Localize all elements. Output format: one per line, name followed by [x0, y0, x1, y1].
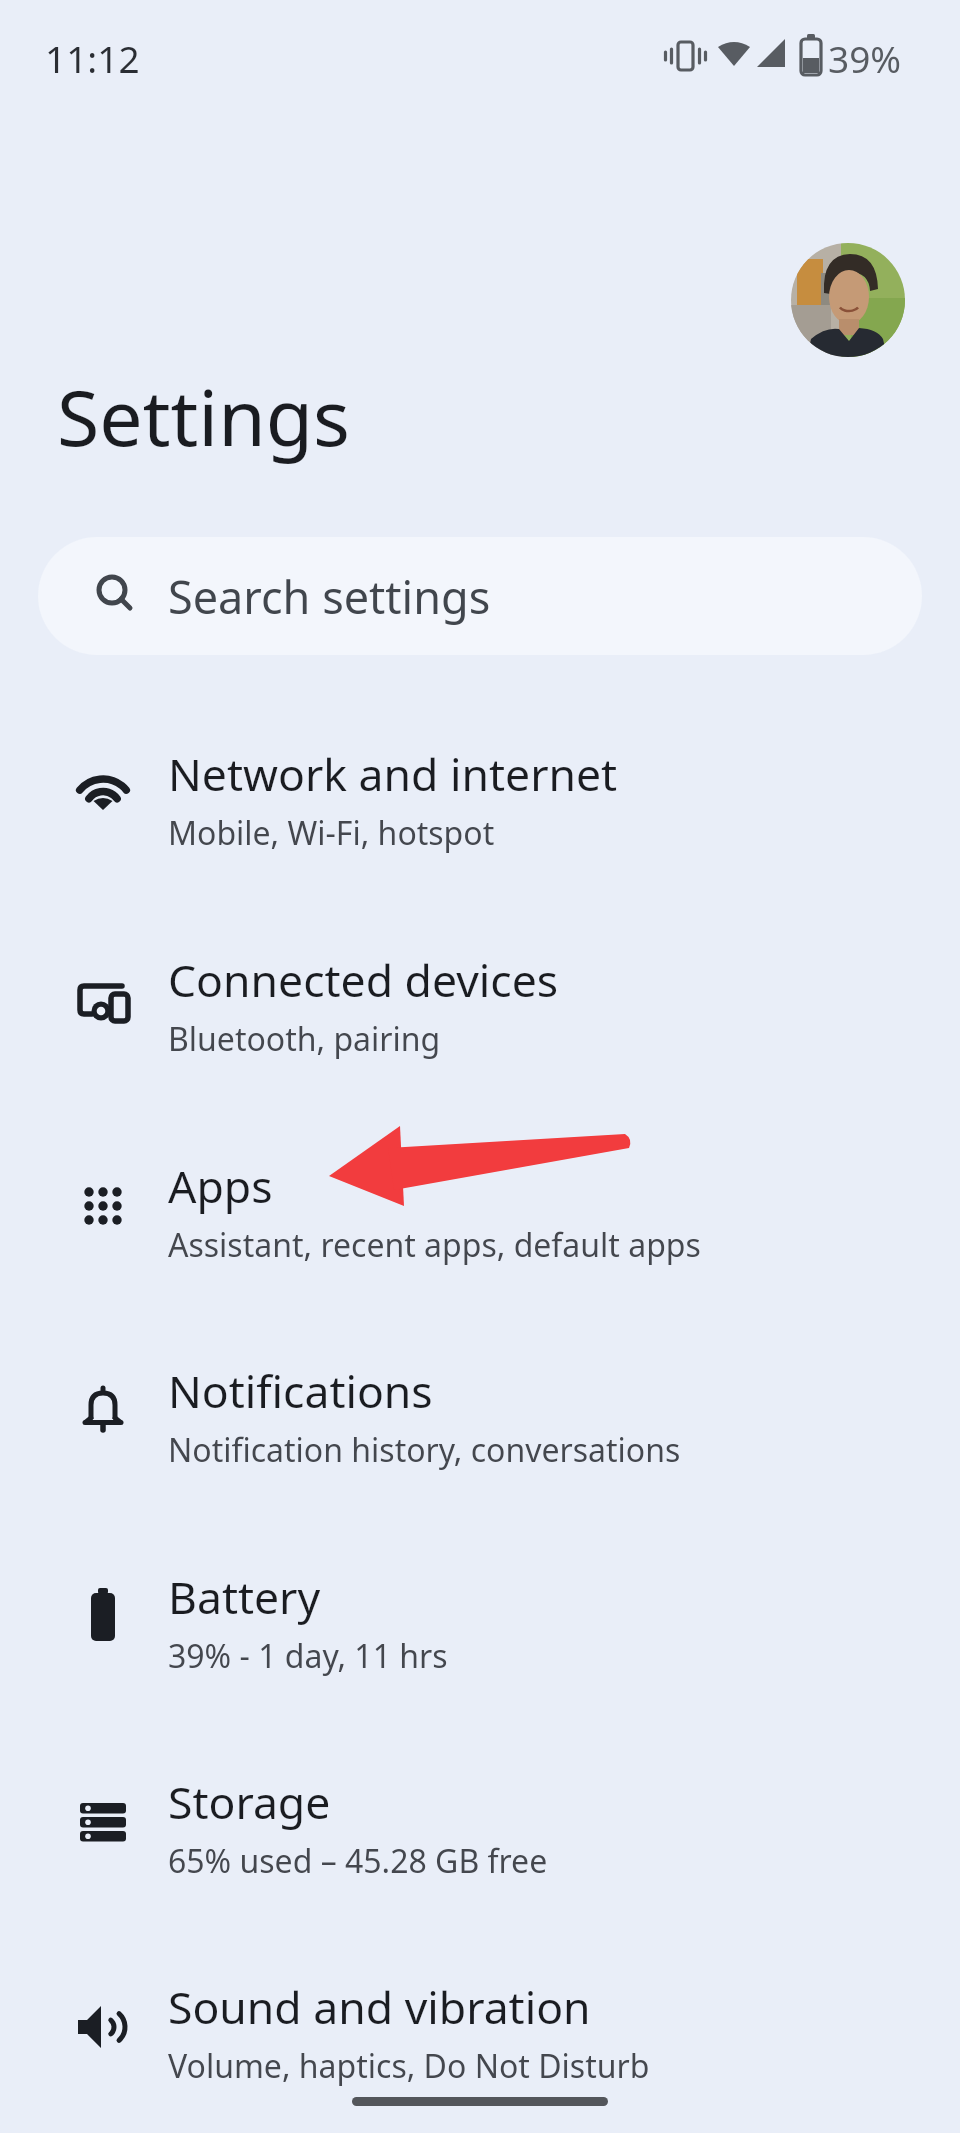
staticText: Assistant, recent apps, default apps: [168, 1223, 701, 1267]
staticText: 65% used – 45.28 GB free: [168, 1839, 548, 1883]
staticText: 39%: [828, 33, 902, 83]
staticText: Notifications: [168, 1360, 433, 1421]
staticText: Settings: [57, 364, 350, 469]
button[interactable]: Sound and vibration: [0, 1923, 960, 2093]
button[interactable]: Battery: [0, 1513, 960, 1683]
staticText: Battery: [168, 1566, 321, 1627]
button[interactable]: Search settings: [38, 537, 922, 655]
staticText: 11:12: [45, 33, 140, 83]
button[interactable]: Apps: [0, 1102, 960, 1272]
staticText: Volume, haptics, Do Not Disturb: [168, 2044, 650, 2088]
staticText: Mobile, Wi-Fi, hotspot: [168, 811, 495, 855]
staticText: Connected devices: [168, 949, 559, 1010]
button[interactable]: Network and internet: [0, 690, 960, 860]
staticText: Notification history, conversations: [168, 1428, 681, 1472]
staticText: Sound and vibration: [168, 1976, 591, 2037]
staticText: Search settings: [168, 566, 491, 627]
staticText: 39% - 1 day, 11 hrs: [168, 1634, 448, 1678]
button[interactable]: [791, 243, 905, 357]
staticText: Bluetooth, pairing: [168, 1017, 441, 1061]
button[interactable]: Storage: [0, 1718, 960, 1888]
staticText: Storage: [168, 1771, 331, 1832]
staticText: Network and internet: [168, 743, 618, 804]
button[interactable]: Notifications: [0, 1307, 960, 1477]
staticText: Apps: [168, 1155, 273, 1216]
button[interactable]: Connected devices: [0, 896, 960, 1066]
